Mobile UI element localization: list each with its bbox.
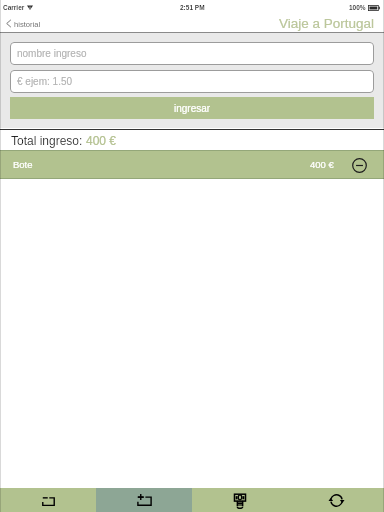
button[interactable]: Bote xyxy=(0,151,384,178)
staticText: 400 € xyxy=(310,159,334,170)
button[interactable]: Actualizar xyxy=(288,488,384,512)
button[interactable]: ingresar xyxy=(10,97,374,119)
button[interactable]: € ejem: 1.50 xyxy=(10,70,374,93)
staticText: ingresar xyxy=(174,103,211,114)
button[interactable]: Dinero xyxy=(192,488,288,512)
staticText: Carrier xyxy=(3,4,25,11)
staticText: 100% xyxy=(349,4,366,11)
button[interactable]: Eliminar Bote xyxy=(347,153,371,177)
button[interactable]: historial xyxy=(6,14,41,33)
staticText: 400 € xyxy=(86,134,117,147)
staticText: nombre ingreso xyxy=(17,48,87,59)
button[interactable]: Nuevo ingreso xyxy=(96,488,192,512)
staticText: € ejem: 1.50 xyxy=(17,76,73,87)
button[interactable]: Salida de dinero xyxy=(0,488,96,512)
staticText: Total ingreso: xyxy=(11,134,86,147)
staticText: historial xyxy=(14,20,41,28)
staticText: Bote xyxy=(13,159,33,170)
button[interactable]: nombre ingreso xyxy=(10,42,374,65)
staticText: 2:51 PM xyxy=(180,4,205,11)
staticText: Viaje a Portugal xyxy=(279,16,375,31)
